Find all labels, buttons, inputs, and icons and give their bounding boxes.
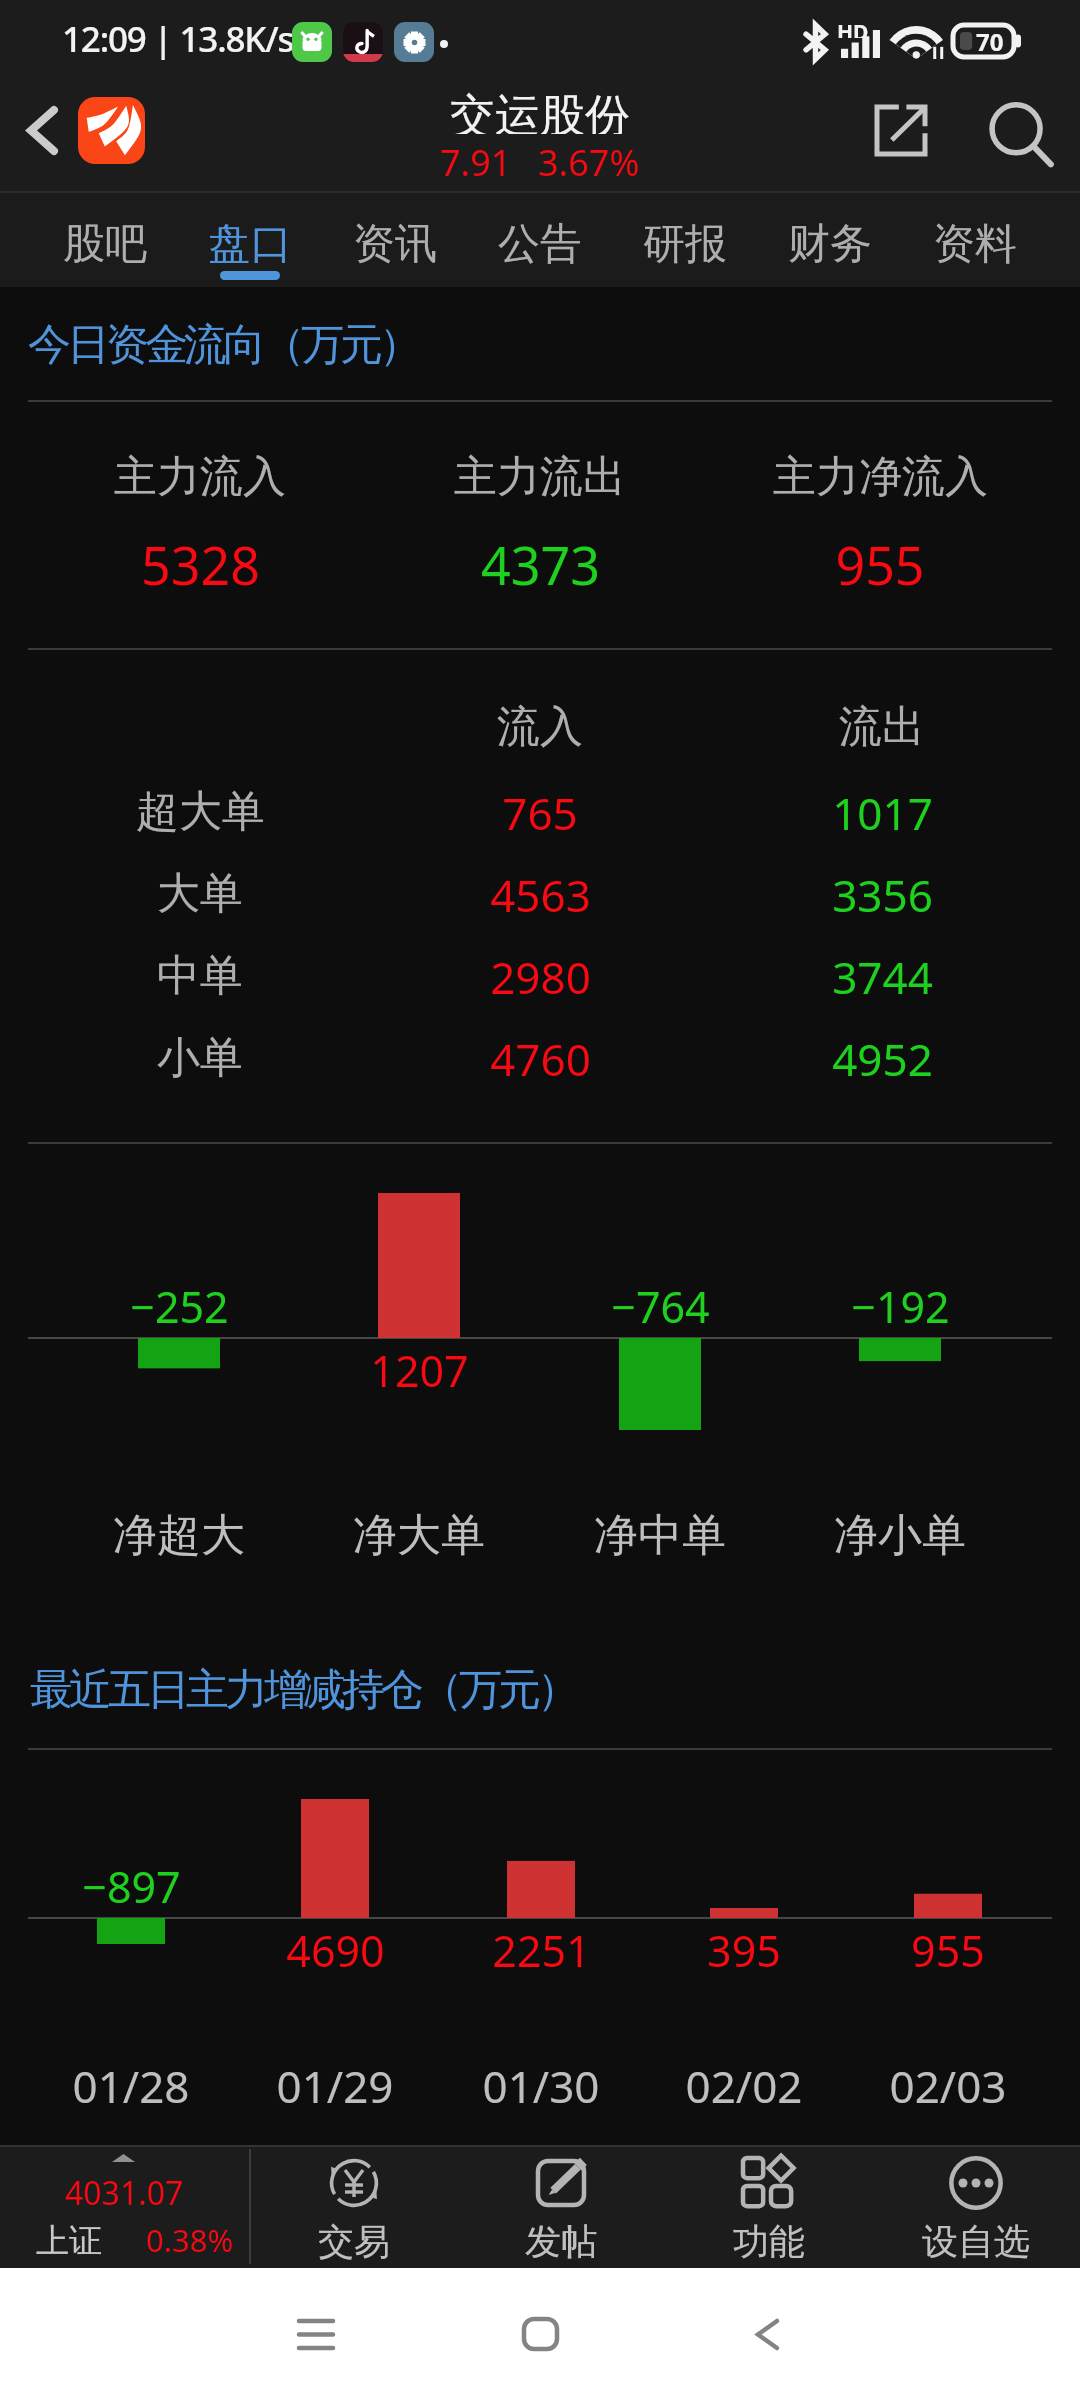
staticText: 3744 [832,947,933,1007]
staticText: 01/28 [72,2056,190,2116]
staticText: 股吧 [63,218,147,270]
staticText: 4563 [490,865,591,925]
button[interactable]: 公告 [468,191,612,287]
button[interactable]: East Money home [78,97,145,164]
staticText: 资讯 [353,218,437,270]
button[interactable]: Recent apps [256,2268,376,2400]
staticText: 主力流入 [114,450,286,504]
staticText: 净小单 [834,1508,966,1563]
staticText: −897 [82,1857,181,1916]
button[interactable]: 财务 [758,191,902,287]
button[interactable]: 盘口 [178,191,322,287]
staticText: 395 [707,1921,781,1980]
staticText: 4690 [286,1921,385,1980]
staticText: 发帖 [525,2219,597,2261]
staticText: 今日资金流向（万元） [30,318,420,372]
staticText: 上证 [36,2220,102,2262]
staticText: 最近五日主力增减持仓（万元） [32,1663,578,1717]
staticText: 小单 [157,1031,243,1085]
staticText: 主力流出 [454,450,626,504]
staticText: 交易 [318,2219,390,2261]
button[interactable]: Home [480,2268,600,2400]
staticText: 3.67% [538,138,640,187]
button[interactable]: 资讯 [323,191,467,287]
button[interactable]: 功能 [666,2145,872,2268]
button[interactable]: Back [8,88,76,172]
staticText: 功能 [733,2219,805,2261]
staticText: 1017 [832,783,933,843]
button[interactable]: Share [857,88,945,172]
staticText: 设自选 [922,2219,1030,2261]
button[interactable]: Search [977,94,1067,175]
staticText: 5328 [141,529,260,600]
staticText: 净大单 [353,1508,485,1563]
staticText: 2251 [492,1921,591,1980]
staticText: 02/03 [889,2056,1007,2116]
button[interactable]: 交易 [251,2145,457,2268]
staticText: 955 [835,529,925,600]
staticText: 70 [976,25,1004,58]
staticText: 765 [502,783,578,843]
staticText: 4952 [832,1029,933,1089]
staticText: 955 [911,1921,985,1980]
staticText: 0.38% [146,2219,234,2261]
staticText: −252 [130,1277,229,1336]
staticText: 4760 [490,1029,591,1089]
staticText: 4373 [481,529,600,600]
staticText: 资料 [933,218,1017,270]
staticText: 7.91 [440,138,512,187]
staticText: 中单 [157,949,243,1003]
staticText: 2980 [490,947,591,1007]
staticText: 净中单 [594,1508,726,1563]
staticText: 公告 [498,218,582,270]
staticText: 02/02 [685,2056,803,2116]
staticText: 01/30 [482,2056,600,2116]
staticText: 净超大 [113,1508,245,1563]
button[interactable]: 资料 [903,191,1047,287]
staticText: 4031.07 [65,2171,184,2213]
staticText: 大单 [157,867,243,921]
button[interactable]: 设自选 [873,2145,1079,2268]
staticText: 流出 [839,700,925,754]
staticText: 交运股份 [450,88,630,134]
button[interactable]: Back [707,2268,827,2400]
staticText: −764 [611,1277,710,1336]
staticText: 12:09 | 13.8K/s [62,15,294,63]
staticText: −192 [851,1277,950,1336]
staticText: 财务 [788,218,872,270]
staticText: 盘口 [208,218,292,270]
staticText: HD [837,18,869,38]
staticText: 1207 [370,1341,469,1400]
button[interactable]: 4031.07 [0,2145,249,2268]
staticText: 主力净流入 [773,450,988,504]
button[interactable]: 研报 [613,191,757,287]
staticText: 01/29 [276,2056,394,2116]
button[interactable]: 发帖 [458,2145,664,2268]
staticText: 流入 [497,700,583,754]
button[interactable]: 股吧 [33,191,177,287]
staticText: 3356 [832,865,933,925]
staticText: 研报 [643,218,727,270]
staticText: 超大单 [136,785,265,839]
